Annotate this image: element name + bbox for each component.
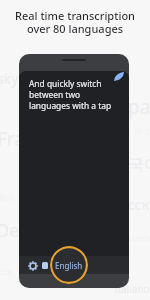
- staticText: Italiano: [114, 282, 150, 296]
- staticText: Deu: [0, 218, 31, 243]
- staticText: And quickly switch: [29, 78, 102, 89]
- staticText: 국어: [128, 155, 150, 175]
- staticText: Nederlands: [128, 234, 150, 244]
- staticText: sky: [0, 69, 19, 88]
- staticText: Fra: [0, 126, 25, 152]
- button[interactable]: Keyboard: [42, 262, 48, 269]
- button[interactable]: English: [50, 246, 88, 284]
- staticText: сски: [128, 195, 150, 214]
- staticText: pañ: [128, 94, 150, 120]
- staticText: languages with a tap: [29, 100, 112, 111]
- staticText: Real time transcription over 80 language…: [15, 8, 135, 36]
- staticText: English: [55, 260, 83, 271]
- button[interactable]: Settings: [28, 261, 38, 271]
- staticText: between two: [29, 89, 81, 100]
